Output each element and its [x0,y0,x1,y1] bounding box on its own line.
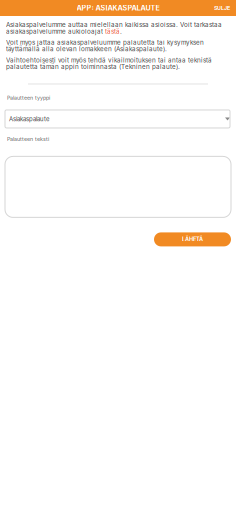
button[interactable]: Asiakaspalaute [0,110,230,128]
staticText: Asiakaspalvelumme auttaa mielellään kaik… [6,21,222,35]
staticText: Palautteen teksti [7,136,49,142]
staticText: Voit myös jättää asiakaspalveluumme pala… [6,39,204,53]
button[interactable] [0,156,231,217]
staticText: LÄHETÄ [182,236,203,243]
staticText: Asiakaspalaute [9,115,49,123]
staticText: APP: ASIAKASPALAUTE [76,4,159,12]
staticText: Vaihtoehtoisesti voit myös tehdä vikailm… [6,56,212,70]
button[interactable]: SULJE [208,2,236,14]
staticText: SULJE [214,5,230,11]
staticText: Palautteen tyyppi [7,94,50,101]
button[interactable]: LÄHETÄ [154,232,231,246]
